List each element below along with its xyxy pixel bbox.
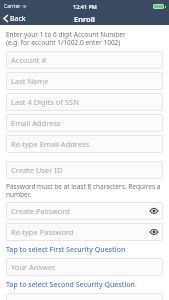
button[interactable]: Tap to select First Security Question — [6, 244, 163, 256]
staticText: Re-type Password — [11, 227, 74, 237]
button[interactable]: Last Name — [6, 72, 163, 90]
button[interactable]: Account # — [6, 51, 163, 69]
button[interactable]: Re-type Email Address — [6, 135, 163, 153]
staticText: Email Address — [11, 118, 61, 128]
button[interactable]: Show password — [148, 205, 160, 217]
staticText: Tap to select Second Security Question — [6, 280, 135, 290]
staticText: Your Answer — [11, 262, 56, 272]
staticText: Account # — [11, 55, 47, 65]
button[interactable]: Your Answer — [6, 258, 163, 276]
button[interactable]: Your Answer — [6, 293, 163, 300]
button[interactable]: Tap to select Second Security Question — [6, 279, 163, 291]
staticText: Tap to select First Security Question — [6, 245, 126, 255]
button[interactable]: Last 4 Digits of SSN — [6, 93, 163, 111]
staticText: Last Name — [11, 76, 49, 86]
staticText: Create Password — [11, 206, 70, 216]
button[interactable]: Create Password — [6, 202, 163, 220]
button[interactable]: Re-type Password — [6, 223, 163, 241]
staticText: Create User ID — [11, 165, 63, 175]
staticText: Carrier — [4, 3, 21, 10]
staticText: Last 4 Digits of SSN — [11, 97, 79, 107]
staticText: Enter your 1 to 6 digit Account Number (… — [6, 30, 126, 47]
button[interactable]: Show password — [148, 226, 160, 238]
button[interactable]: Create User ID — [6, 161, 163, 179]
staticText: 12:41 PM — [73, 3, 97, 10]
staticText: Re-type Email Address — [11, 139, 90, 149]
staticText: Password must be at least 8 characters. … — [6, 182, 163, 199]
button[interactable]: Back — [0, 12, 32, 25]
staticText: Back — [10, 14, 26, 23]
staticText: Enroll — [74, 14, 95, 24]
button[interactable]: Email Address — [6, 114, 163, 132]
